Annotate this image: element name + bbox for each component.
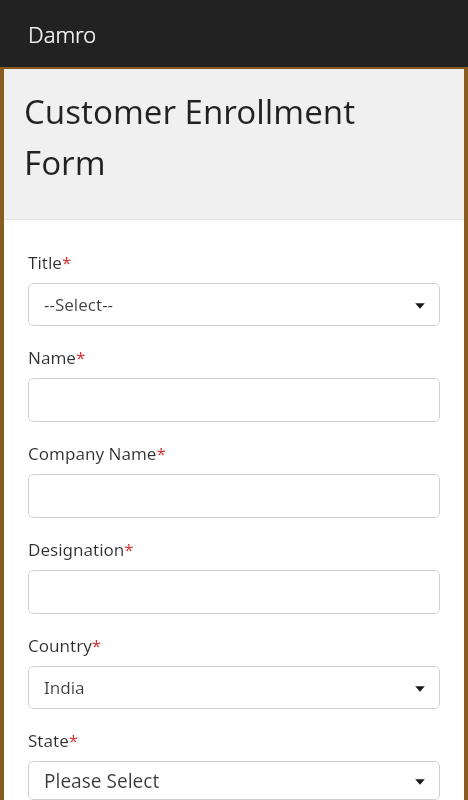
staticText: --Select-- [44, 293, 414, 316]
button[interactable]: Damro [0, 0, 468, 67]
staticText: Name* [28, 346, 86, 369]
staticText: Title* [28, 251, 72, 274]
button[interactable]: India [28, 666, 440, 709]
button[interactable] [28, 570, 440, 614]
staticText: Please Select [44, 768, 414, 794]
staticText: Damro [28, 19, 97, 49]
button[interactable]: --Select-- [28, 283, 440, 326]
staticText: Country* [28, 634, 102, 657]
staticText: Customer Enrollment [24, 89, 356, 134]
staticText: Form [24, 140, 106, 185]
staticText: State* [28, 729, 79, 752]
staticText: Company Name* [28, 442, 166, 465]
button[interactable] [28, 378, 440, 422]
button[interactable] [28, 474, 440, 518]
staticText: Designation* [28, 538, 134, 561]
staticText: India [44, 676, 414, 699]
button[interactable]: Please Select [28, 761, 440, 800]
